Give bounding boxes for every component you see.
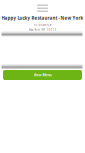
staticText: View Menu xyxy=(33,73,51,77)
staticText: Happy Lucky Restaurant - New York xyxy=(1,15,83,21)
button[interactable]: Menu xyxy=(34,2,50,14)
button[interactable]: View Menu xyxy=(3,70,82,80)
staticText: New York, NY 10013 xyxy=(28,28,56,32)
staticText: 36 Bowery St xyxy=(33,23,51,27)
